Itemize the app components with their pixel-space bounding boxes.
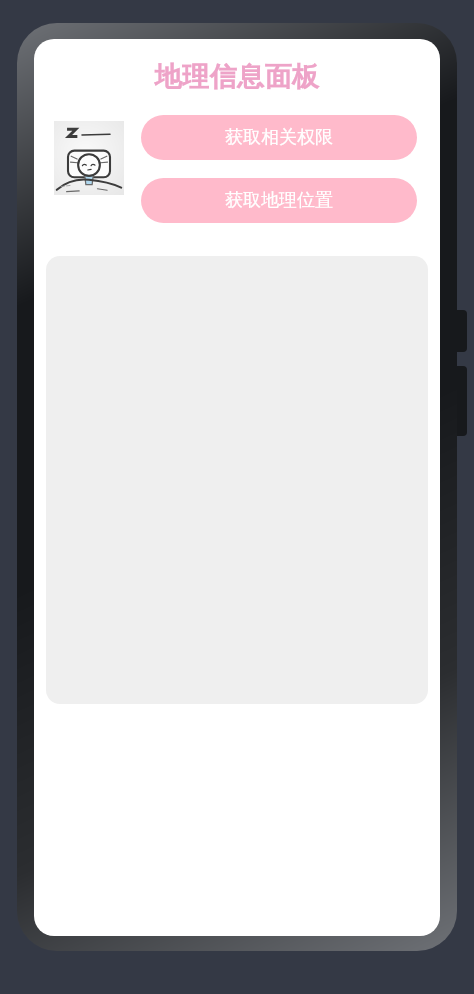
staticText: 地理信息面板: [34, 60, 440, 94]
button[interactable]: 获取地理位置: [141, 178, 417, 223]
staticText: 获取地理位置: [225, 189, 333, 212]
button[interactable]: 获取相关权限: [141, 115, 417, 160]
other: Sleeping illustration: [54, 121, 124, 195]
staticText: 获取相关权限: [225, 126, 333, 149]
